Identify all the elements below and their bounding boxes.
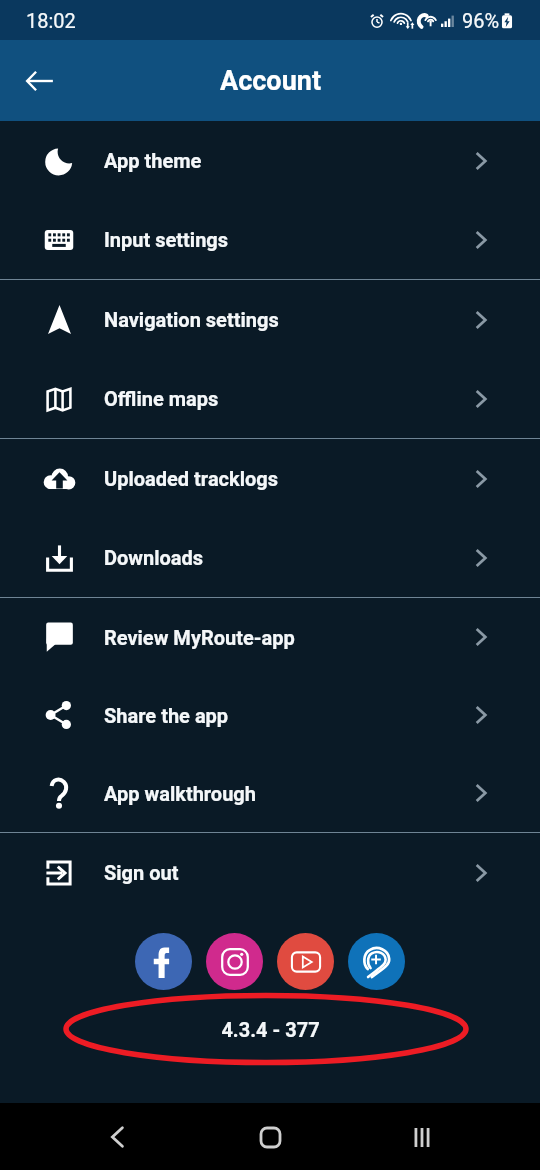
staticText: Sign out: [104, 861, 179, 884]
button[interactable]: App walkthrough: [0, 754, 540, 832]
button[interactable]: Downloads: [0, 518, 540, 597]
staticText: Uploaded tracklogs: [104, 467, 279, 490]
staticText: Account: [220, 65, 321, 97]
staticText: 4.3.4 - 377: [221, 1018, 320, 1041]
button[interactable]: Facebook: [135, 933, 192, 990]
button[interactable]: Recent apps: [400, 1115, 444, 1159]
button[interactable]: Back: [96, 1115, 140, 1159]
staticText: Offline maps: [104, 387, 219, 410]
staticText: App theme: [104, 149, 202, 172]
staticText: Navigation settings: [104, 308, 279, 331]
button[interactable]: Uploaded tracklogs: [0, 439, 540, 518]
staticText: Share the app: [104, 704, 229, 727]
staticText: Review MyRoute-app: [104, 626, 295, 649]
button[interactable]: Review MyRoute-app: [0, 598, 540, 676]
staticText: 96%: [462, 9, 500, 32]
staticText: App walkthrough: [104, 782, 256, 805]
button[interactable]: Offline maps: [0, 359, 540, 438]
button[interactable]: Sign out: [0, 833, 540, 912]
staticText: Input settings: [104, 228, 229, 251]
button[interactable]: Back: [12, 53, 68, 109]
button[interactable]: Instagram: [206, 933, 263, 990]
button[interactable]: Input settings: [0, 200, 540, 279]
button[interactable]: Navigation settings: [0, 280, 540, 359]
button[interactable]: MyRoute-app: [348, 933, 405, 990]
button[interactable]: Share the app: [0, 676, 540, 754]
staticText: Downloads: [104, 546, 204, 569]
button[interactable]: App theme: [0, 121, 540, 200]
button[interactable]: YouTube: [277, 933, 334, 990]
button[interactable]: Home: [248, 1115, 292, 1159]
staticText: 18:02: [26, 9, 76, 32]
